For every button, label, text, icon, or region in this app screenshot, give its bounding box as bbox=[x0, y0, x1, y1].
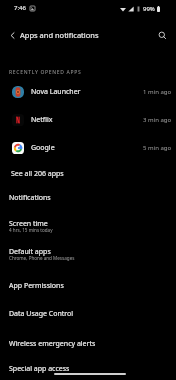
staticText: Notifications bbox=[9, 193, 51, 203]
staticText: Data Usage Control bbox=[9, 309, 74, 319]
staticText: App Permissions bbox=[9, 281, 64, 291]
staticText: Apps and notifications bbox=[20, 30, 99, 40]
staticText: Screen time bbox=[9, 219, 48, 229]
staticText: Nova Launcher bbox=[31, 87, 81, 97]
staticText: Wireless emergency alerts bbox=[9, 339, 96, 349]
button[interactable]: Nova Launcher bbox=[0, 86, 176, 98]
staticText: 99% bbox=[143, 5, 155, 13]
button[interactable]: Netflix bbox=[0, 114, 176, 126]
button[interactable]: Data Usage Control bbox=[0, 302, 176, 324]
button[interactable]: Special app access bbox=[0, 357, 176, 379]
staticText: 4 hrs, 15 mins today bbox=[9, 227, 53, 233]
staticText: Special app access bbox=[9, 364, 70, 374]
button[interactable]: Google bbox=[0, 142, 176, 154]
staticText: See all 206 apps bbox=[11, 169, 64, 179]
button[interactable]: Notifications bbox=[0, 186, 176, 208]
button[interactable]: Wireless emergency alerts bbox=[0, 332, 176, 354]
button[interactable]: See all 206 apps bbox=[0, 166, 176, 182]
staticText: Chrome, Phone and Messages bbox=[9, 255, 75, 261]
staticText: 1 min ago bbox=[143, 88, 172, 96]
staticText: 7:46 bbox=[14, 4, 26, 12]
staticText: Default apps bbox=[9, 247, 51, 257]
button[interactable]: Search bbox=[154, 27, 170, 43]
staticText: 5 min ago bbox=[143, 144, 172, 152]
button[interactable]: Back bbox=[3, 26, 21, 44]
button[interactable]: App Permissions bbox=[0, 274, 176, 296]
staticText: RECENTLY OPENED APPS bbox=[9, 69, 82, 76]
button[interactable]: Screen time bbox=[0, 215, 176, 243]
staticText: Netflix bbox=[31, 115, 53, 125]
staticText: Google bbox=[31, 143, 55, 153]
staticText: 3 min ago bbox=[143, 116, 172, 124]
button[interactable]: Default apps bbox=[0, 243, 176, 271]
